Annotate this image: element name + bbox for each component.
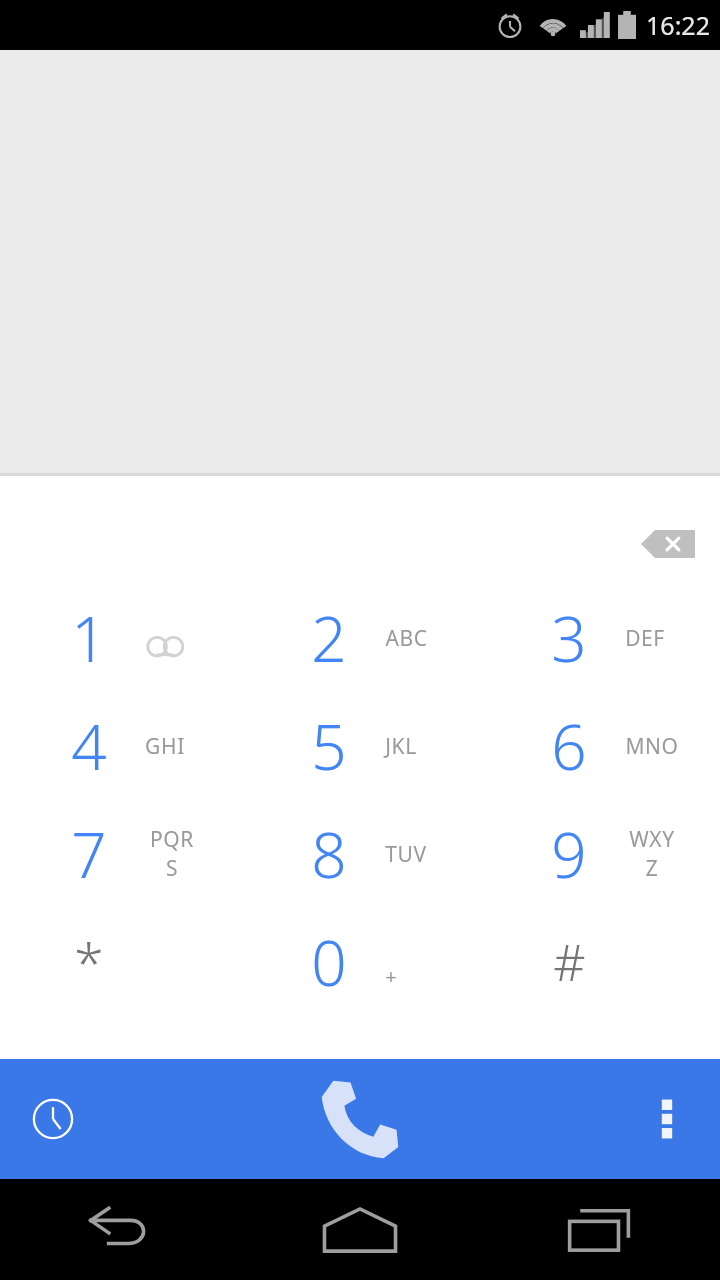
button[interactable]: 2 — [240, 584, 480, 692]
button[interactable]: Call history — [13, 1079, 93, 1159]
button[interactable]: 1 — [0, 584, 240, 692]
button[interactable]: More options — [627, 1079, 707, 1159]
staticText: DEF — [625, 624, 665, 653]
staticText: JKL — [385, 732, 417, 761]
button[interactable]: Back — [0, 1179, 240, 1280]
button[interactable]: Home — [240, 1179, 480, 1280]
staticText: WXYZ — [625, 825, 679, 883]
staticText: GHI — [145, 732, 185, 761]
button[interactable]: 7 — [0, 800, 240, 908]
staticText: 1 — [71, 596, 107, 680]
staticText: 7 — [71, 812, 107, 896]
button[interactable]: # — [480, 908, 720, 1016]
staticText: 6 — [551, 704, 587, 788]
staticText: 4 — [71, 704, 107, 788]
button[interactable]: Recents — [480, 1179, 720, 1280]
button[interactable]: * — [0, 908, 240, 1016]
staticText: 16:22 — [646, 8, 710, 42]
staticText: 0 — [311, 920, 347, 1004]
staticText: 8 — [311, 812, 347, 896]
button[interactable]: Call — [305, 1069, 415, 1169]
button[interactable]: 3 — [480, 584, 720, 692]
button[interactable]: Delete — [636, 520, 700, 568]
button[interactable]: 5 — [240, 692, 480, 800]
staticText: ABC — [385, 624, 428, 653]
button[interactable]: 6 — [480, 692, 720, 800]
staticText: # — [553, 928, 586, 996]
staticText: 2 — [311, 596, 347, 680]
staticText: 9 — [551, 812, 587, 896]
button[interactable]: 4 — [0, 692, 240, 800]
button[interactable]: 9 — [480, 800, 720, 908]
staticText: 5 — [311, 704, 347, 788]
staticText: 3 — [551, 596, 587, 680]
staticText: + — [385, 963, 397, 990]
staticText: PQRS — [145, 825, 199, 883]
button[interactable]: 8 — [240, 800, 480, 908]
staticText: * — [74, 925, 104, 999]
staticText: TUV — [385, 840, 427, 869]
staticText: MNO — [625, 732, 679, 761]
button[interactable]: 0 — [240, 908, 480, 1016]
